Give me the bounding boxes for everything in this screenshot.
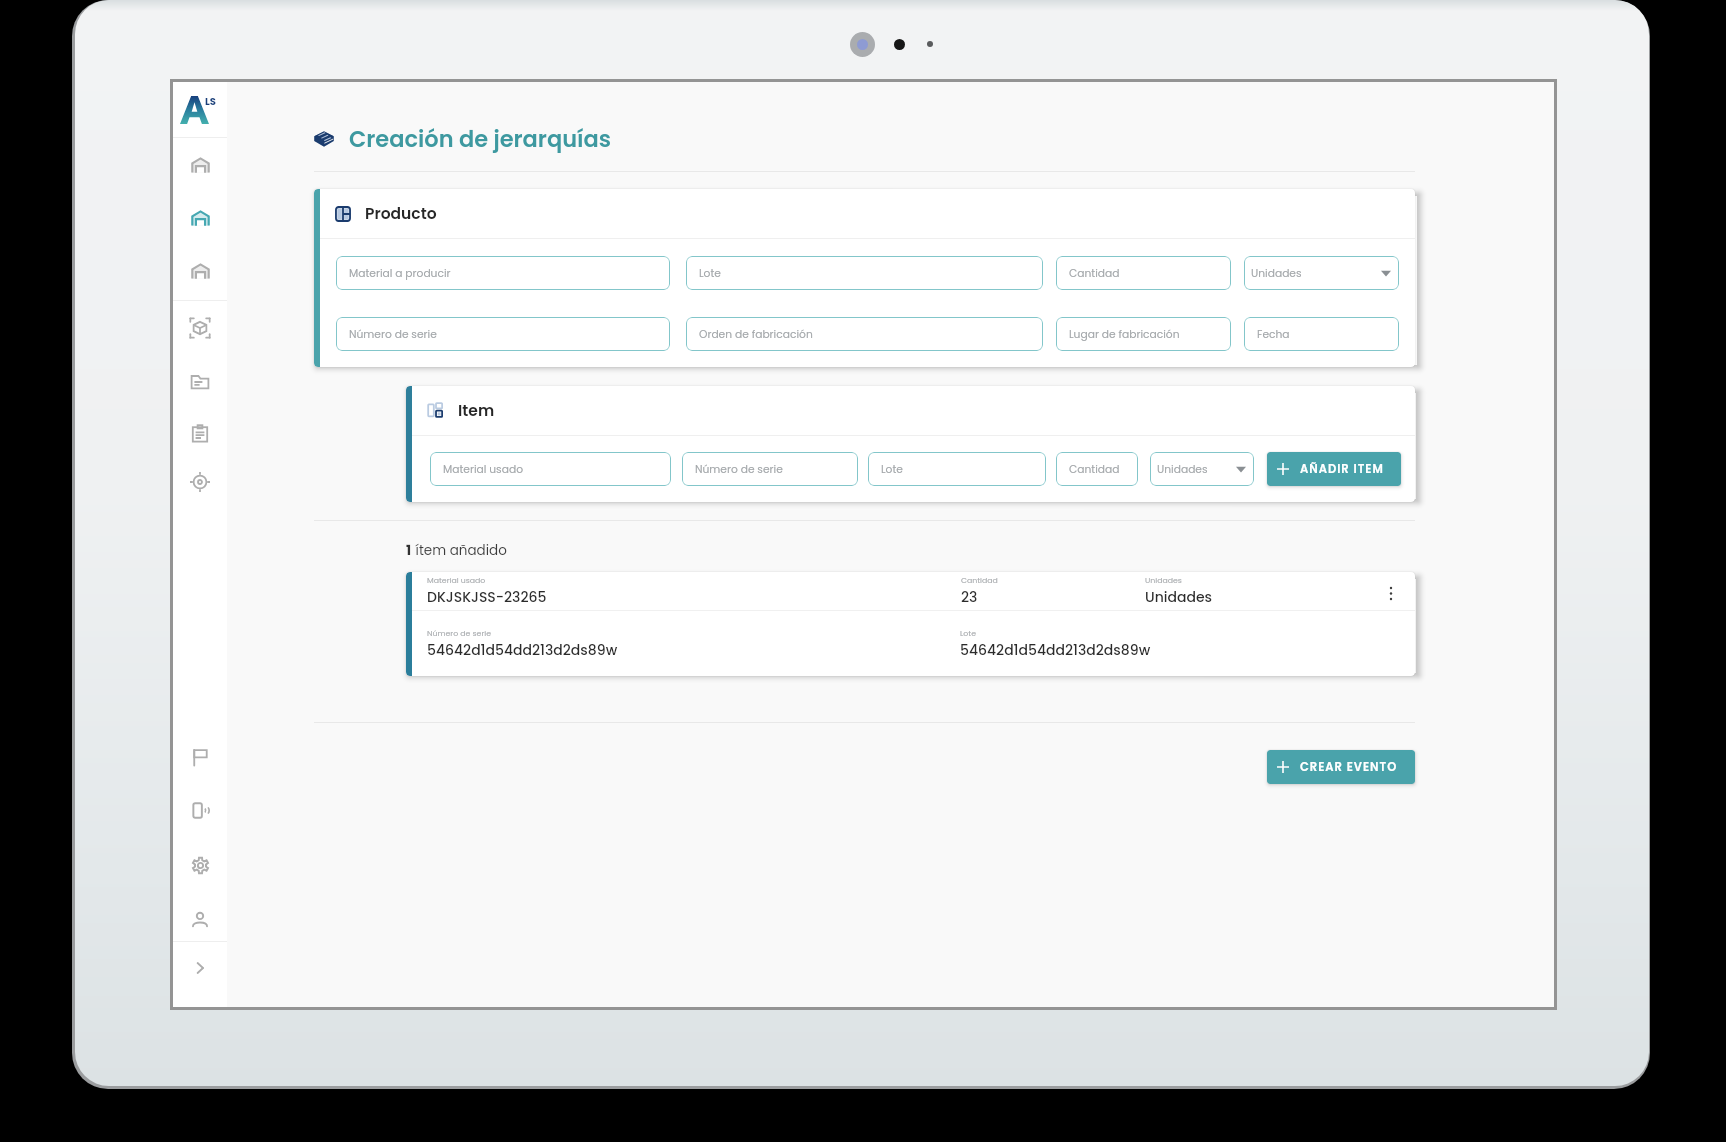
staticText: Unidades (1145, 575, 1182, 586)
button[interactable]: Orden de fabricación (686, 317, 1043, 351)
button[interactable]: Unidades (1150, 452, 1254, 486)
button[interactable]: Escanear (173, 304, 227, 352)
button[interactable]: Informes (173, 410, 227, 458)
button[interactable]: Almacén (173, 141, 227, 189)
staticText: Cantidad (961, 575, 998, 586)
staticText: Lote (960, 628, 977, 639)
staticText: Creación de jerarquías (349, 123, 612, 154)
button[interactable]: More options (1367, 572, 1415, 610)
staticText: ítem añadido (412, 541, 507, 560)
button[interactable]: Número de serie (336, 317, 670, 351)
button[interactable]: Número de serie (682, 452, 858, 486)
staticText: Unidades (1157, 462, 1208, 477)
button[interactable]: Localizar (173, 458, 227, 506)
button[interactable]: Expandir (173, 944, 227, 992)
staticText: 54642d1d54dd213d2ds89w (427, 640, 618, 660)
button[interactable]: Material a producir (336, 256, 670, 290)
button[interactable]: Almacén (173, 247, 227, 295)
staticText: Unidades (1251, 266, 1302, 281)
staticText: Cantidad (1069, 462, 1120, 477)
staticText: 23 (961, 587, 978, 607)
button[interactable]: Cantidad (1056, 452, 1138, 486)
button[interactable]: Documentos (173, 358, 227, 406)
staticText: AÑADIR ITEM (1300, 461, 1384, 477)
staticText: LS (205, 94, 216, 108)
button[interactable]: Lugar de fabricación (1056, 317, 1231, 351)
button[interactable]: Unidades (1244, 256, 1399, 290)
staticText: 54642d1d54dd213d2ds89w (960, 640, 1151, 660)
staticText: Material usado (443, 462, 523, 477)
staticText: CREAR EVENTO (1300, 759, 1398, 775)
staticText: Número de serie (427, 628, 492, 639)
button[interactable]: Lote (868, 452, 1046, 486)
button[interactable]: Perfil (173, 895, 227, 943)
staticText: Unidades (1145, 587, 1213, 607)
button[interactable]: Almacén activo (173, 194, 227, 242)
staticText: Lugar de fabricación (1069, 327, 1180, 342)
staticText: DKJSKJSS-23265 (427, 587, 547, 607)
button[interactable]: Incidencias (173, 733, 227, 781)
button[interactable]: Lote (686, 256, 1043, 290)
staticText: 1 (406, 541, 412, 560)
staticText: Fecha (1257, 327, 1290, 342)
button[interactable]: Cantidad (1056, 256, 1231, 290)
staticText: Número de serie (349, 327, 437, 342)
button[interactable]: Material usado (430, 452, 671, 486)
button[interactable]: CREAR EVENTO (1267, 750, 1415, 784)
staticText: Material usado (427, 575, 486, 586)
button[interactable]: Ajustes (173, 841, 227, 889)
staticText: Número de serie (695, 462, 783, 477)
staticText: Orden de fabricación (699, 327, 813, 342)
staticText: Lote (881, 462, 903, 477)
staticText: Item (458, 400, 495, 422)
staticText: Material a producir (349, 266, 451, 281)
staticText: Cantidad (1069, 266, 1120, 281)
staticText: Producto (365, 203, 437, 225)
button[interactable]: Dispositivos (173, 786, 227, 834)
button[interactable]: AÑADIR ITEM (1267, 452, 1401, 486)
staticText: Lote (699, 266, 721, 281)
button[interactable]: Fecha (1244, 317, 1399, 351)
